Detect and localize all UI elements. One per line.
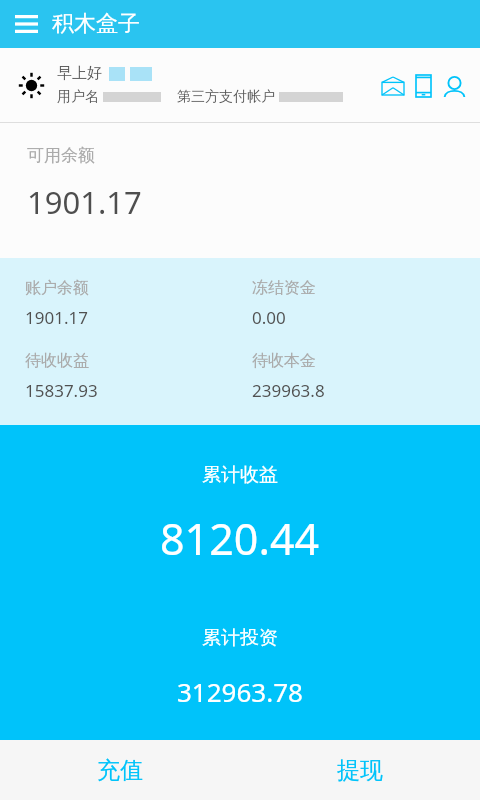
- staticText: 早上好: [57, 64, 102, 83]
- staticText: 待收本金: [252, 351, 316, 371]
- staticText: 1901.17: [27, 181, 142, 223]
- staticText: 第三方支付帐户: [177, 88, 275, 106]
- button[interactable]: 待收本金: [252, 351, 480, 402]
- staticText: 积木盒子: [52, 10, 140, 38]
- staticText: 用户名: [57, 88, 99, 106]
- button[interactable]: 提现: [240, 740, 480, 800]
- button[interactable]: Profile: [439, 70, 470, 101]
- button[interactable]: Menu: [8, 6, 44, 42]
- staticText: 冻结资金: [252, 278, 316, 298]
- staticText: 累计收益: [202, 463, 278, 487]
- button[interactable]: 充值: [0, 740, 240, 800]
- staticText: 239963.8: [252, 379, 325, 402]
- button[interactable]: 冻结资金: [252, 278, 480, 329]
- staticText: 累计投资: [202, 626, 278, 650]
- staticText: 8120.44: [160, 509, 320, 568]
- staticText: 提现: [337, 756, 383, 785]
- staticText: 账户余额: [25, 278, 89, 298]
- button[interactable]: 可用余额: [0, 123, 480, 258]
- staticText: 待收收益: [25, 351, 89, 371]
- staticText: 15837.93: [25, 379, 98, 402]
- button[interactable]: Messages: [377, 70, 408, 101]
- button[interactable]: 待收收益: [25, 351, 252, 402]
- staticText: 充值: [97, 756, 143, 785]
- button[interactable]: 账户余额: [25, 278, 252, 329]
- staticText: 1901.17: [25, 306, 88, 329]
- staticText: 0.00: [252, 306, 286, 329]
- button[interactable]: Mobile: [408, 70, 439, 101]
- button[interactable]: 早上好: [0, 48, 480, 122]
- staticText: 可用余额: [27, 145, 95, 166]
- staticText: 312963.78: [177, 674, 303, 709]
